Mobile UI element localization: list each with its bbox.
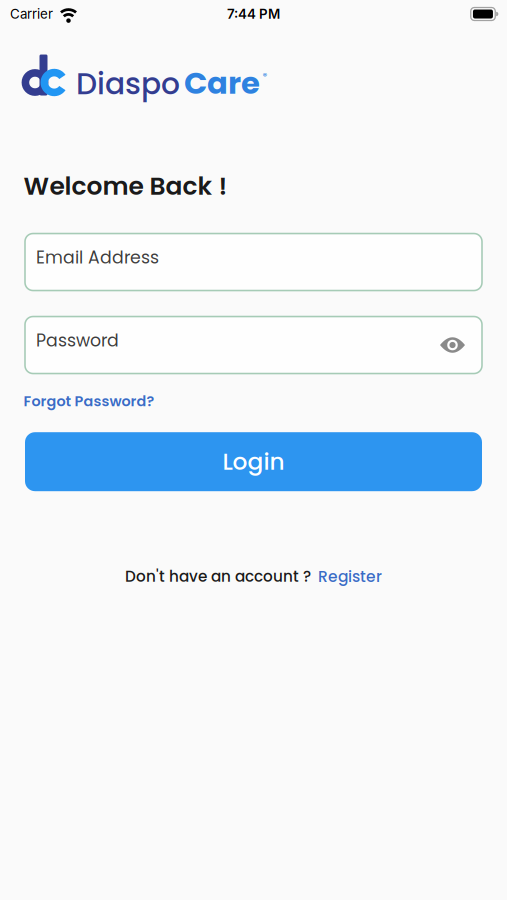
staticText: Forgot Password? (23, 391, 154, 411)
button[interactable]: Forgot Password? (23, 391, 154, 411)
button[interactable]: Show password (440, 337, 482, 353)
button[interactable]: Register (318, 566, 382, 587)
staticText: Care (184, 61, 260, 104)
staticText: Login (222, 445, 284, 478)
staticText: Email Address (36, 245, 159, 270)
staticText: ® (262, 69, 267, 82)
button[interactable]: Login (25, 432, 482, 491)
staticText: Welcome Back ! (23, 169, 227, 203)
staticText: Register (318, 566, 382, 587)
staticText: 7:44 PM (227, 6, 280, 22)
staticText: Password (36, 328, 119, 353)
staticText: Carrier (10, 6, 53, 22)
staticText: Don't have an account ? (125, 566, 311, 587)
staticText: Diaspo (76, 63, 180, 105)
